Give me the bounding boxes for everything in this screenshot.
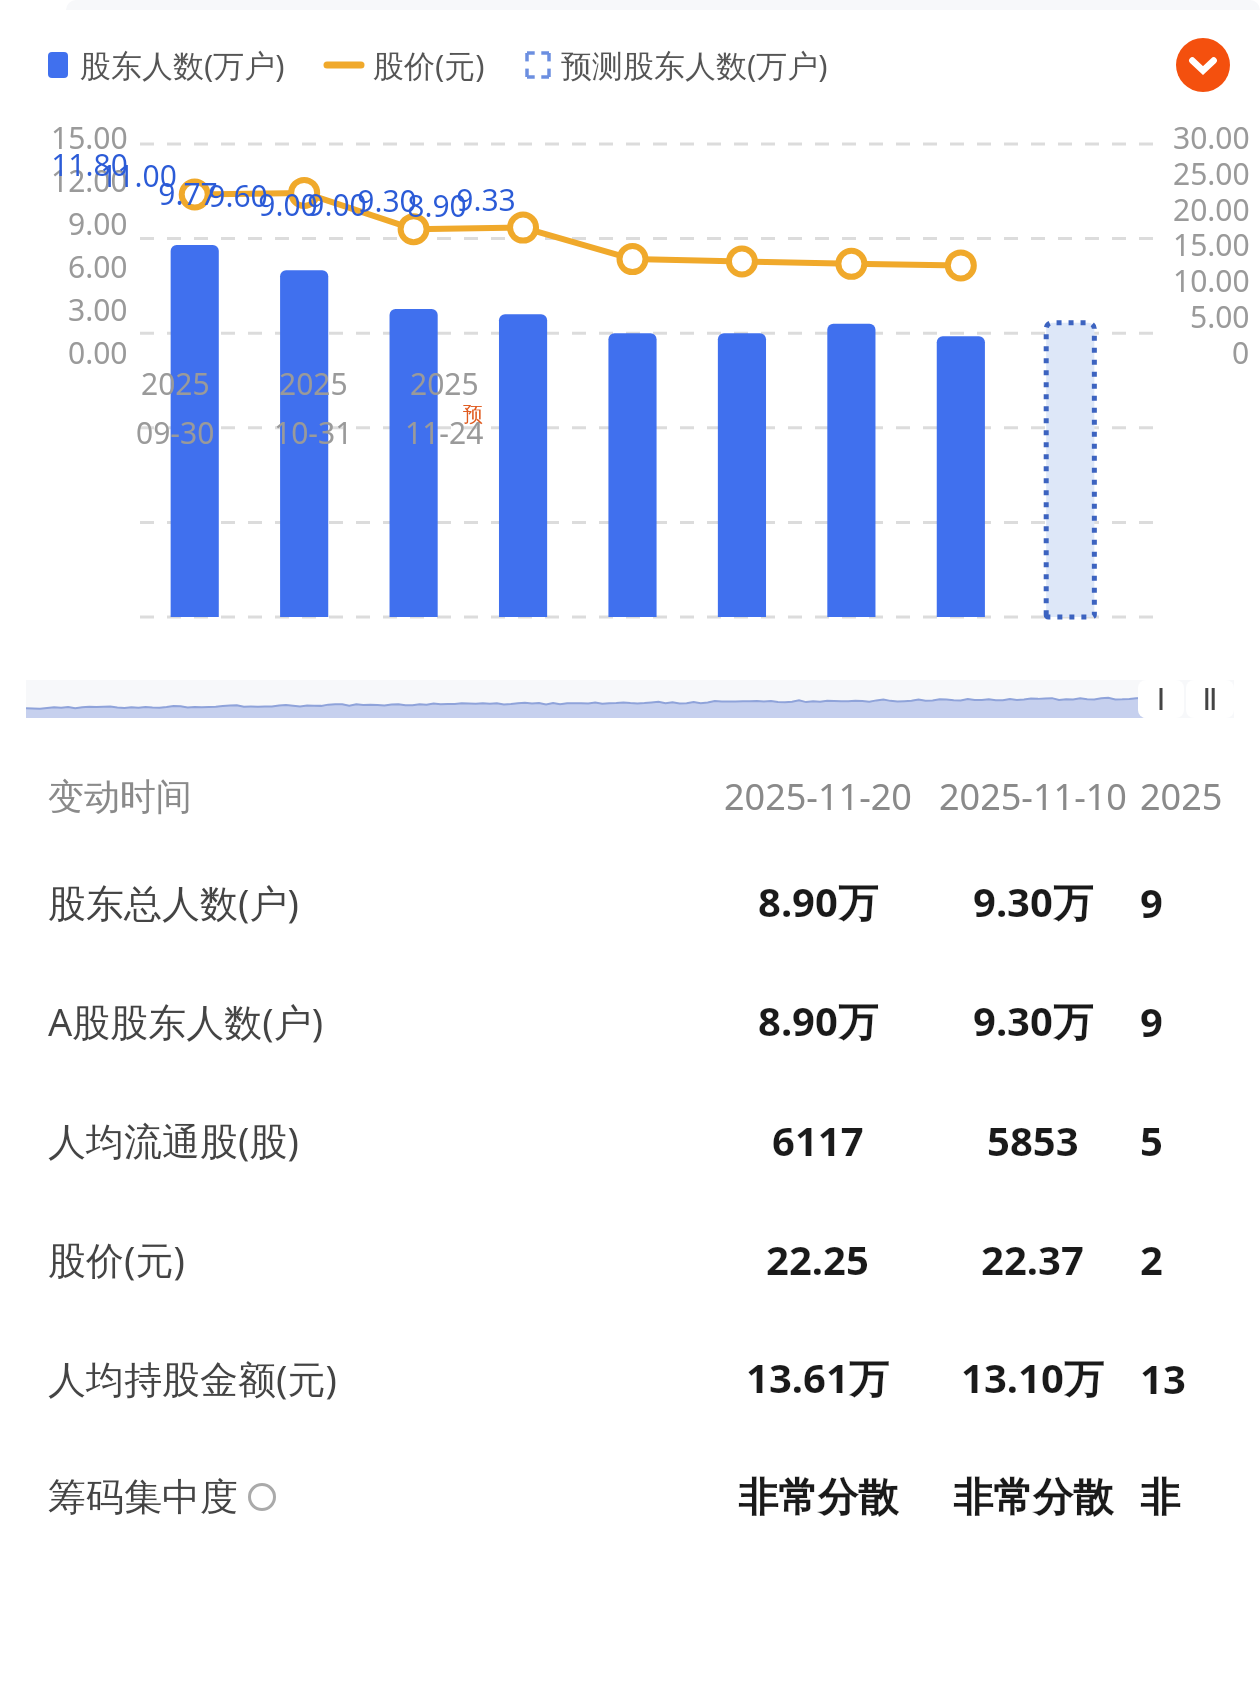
button[interactable]: 预测股东人数(万户) xyxy=(527,44,828,86)
staticText: 变动时间 xyxy=(48,774,192,819)
staticText: 股价(元) xyxy=(48,1233,185,1285)
staticText: 9.77 xyxy=(158,173,218,214)
staticText: 5853 xyxy=(987,1113,1079,1167)
staticText: 9.30 xyxy=(357,180,417,221)
staticText: 6.00 xyxy=(68,246,128,287)
staticText: 2025 xyxy=(1140,772,1223,821)
staticText: 25.00 xyxy=(1173,153,1250,194)
staticText: 09-30 xyxy=(136,412,215,453)
staticText: 22.37 xyxy=(981,1232,1084,1286)
staticText: 9.00 xyxy=(258,184,318,225)
staticText: 2025 xyxy=(141,363,210,404)
staticText: 9.30万 xyxy=(973,993,1093,1048)
staticText: 11.00 xyxy=(100,155,177,196)
button[interactable]: 筹码集中度 xyxy=(0,1437,1260,1556)
staticText: 5 xyxy=(1140,1113,1163,1167)
button[interactable]: 股价(元) xyxy=(0,1199,1260,1318)
staticText: 人均流通股(股) xyxy=(48,1114,299,1166)
staticText: 8.90万 xyxy=(758,874,878,929)
staticText: 13.10万 xyxy=(961,1350,1104,1405)
staticText: 2025 xyxy=(279,363,348,404)
staticText: 5.00 xyxy=(1190,296,1250,337)
staticText: 12.00 xyxy=(51,160,128,201)
staticText: 11.80 xyxy=(51,144,128,185)
staticText: 13.61万 xyxy=(746,1350,889,1405)
button[interactable]: A股股东人数(户) xyxy=(0,961,1260,1080)
staticText: 10-31 xyxy=(274,412,353,453)
staticText: 6117 xyxy=(772,1113,864,1167)
staticText: 15.00 xyxy=(51,117,128,158)
staticText: 预测股东人数(万户) xyxy=(561,44,828,86)
staticText: 股东总人数(户) xyxy=(48,876,299,928)
button[interactable]: Range end handle xyxy=(1186,680,1234,718)
staticText: 9.30万 xyxy=(973,874,1093,929)
staticText: 9.00 xyxy=(307,184,367,225)
staticText: 非 xyxy=(1140,1472,1180,1522)
staticText: 9 xyxy=(1140,875,1163,929)
staticText: 15.00 xyxy=(1173,224,1250,265)
staticText: 8.90 xyxy=(407,185,467,226)
staticText: 预 xyxy=(463,402,483,427)
staticText: 2025 xyxy=(410,363,479,404)
button[interactable]: 股东人数(万户) xyxy=(48,44,285,86)
staticText: 9.60 xyxy=(208,175,268,216)
staticText: 22.25 xyxy=(766,1232,869,1286)
staticText: 2 xyxy=(1140,1232,1163,1286)
staticText: 2025-11-10 xyxy=(939,772,1127,821)
staticText: 股东人数(万户) xyxy=(80,44,285,86)
staticText: 3.00 xyxy=(68,289,128,330)
staticText: 13 xyxy=(1140,1351,1186,1405)
staticText: 20.00 xyxy=(1173,189,1250,230)
staticText: A股股东人数(户) xyxy=(48,995,324,1047)
staticText: 人均持股金额(元) xyxy=(48,1352,337,1404)
staticText: 非常分散 xyxy=(738,1472,898,1522)
button[interactable]: 人均持股金额(元) xyxy=(0,1318,1260,1437)
button[interactable]: Range start handle xyxy=(26,680,1234,718)
staticText: 9.00 xyxy=(68,203,128,244)
button[interactable]: 股价(元) xyxy=(327,44,485,86)
button[interactable]: Collapse xyxy=(1176,38,1230,92)
staticText: 8.90万 xyxy=(758,993,878,1048)
staticText: 10.00 xyxy=(1173,260,1250,301)
button[interactable]: 人均流通股(股) xyxy=(0,1080,1260,1199)
staticText: 9.33 xyxy=(456,179,516,220)
staticText: 0.00 xyxy=(68,332,128,373)
button[interactable]: Range start handle xyxy=(1138,680,1184,718)
staticText: 2025-11-20 xyxy=(724,772,912,821)
staticText: 0 xyxy=(1232,332,1250,373)
staticText: 股价(元) xyxy=(373,44,485,86)
staticText: 11-24 xyxy=(405,412,484,453)
staticText: 非常分散 xyxy=(953,1472,1113,1522)
staticText: 筹码集中度 xyxy=(48,1473,238,1521)
staticText: 30.00 xyxy=(1173,117,1250,158)
staticText: 9 xyxy=(1140,994,1163,1048)
button[interactable]: 股东总人数(户) xyxy=(0,842,1260,961)
